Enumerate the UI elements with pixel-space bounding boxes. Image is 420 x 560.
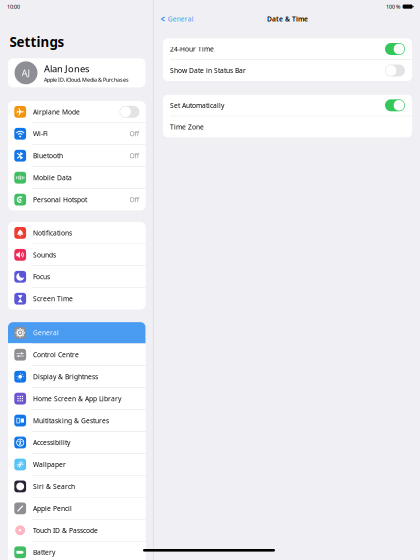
button[interactable]: Multitasking & Gestures [8, 410, 145, 431]
staticText: Settings [9, 33, 64, 51]
button[interactable]: Bluetooth [8, 145, 145, 166]
button[interactable]: Set Automatically [163, 95, 412, 116]
staticText: Airplane Mode [33, 107, 80, 116]
staticText: Time Zone [170, 122, 204, 131]
button[interactable]: General [8, 322, 145, 343]
button[interactable]: General [163, 12, 200, 26]
staticText: Alan Jones [44, 62, 89, 75]
button[interactable]: Focus [8, 266, 145, 287]
staticText: Apple Pencil [33, 504, 72, 513]
button[interactable]: Apple Pencil [8, 498, 145, 519]
staticText: 10:00 [7, 3, 20, 10]
staticText: Set Automatically [170, 101, 224, 110]
staticText: Off [129, 151, 139, 160]
staticText: Accessibility [33, 438, 70, 447]
staticText: Apple ID, iCloud, Media & Purchases [44, 76, 129, 83]
staticText: Wi-Fi [33, 129, 48, 138]
staticText: Screen Time [33, 294, 73, 303]
button[interactable]: Mobile Data [8, 167, 145, 188]
staticText: Battery [33, 548, 55, 557]
staticText: Home Screen & App Library [33, 394, 121, 403]
staticText: AJ [21, 67, 30, 79]
staticText: Bluetooth [33, 151, 63, 160]
button[interactable]: Time Zone [163, 116, 412, 137]
staticText: Show Date in Status Bar [170, 66, 246, 75]
staticText: Display & Brightness [33, 372, 98, 381]
staticText: General [33, 328, 59, 337]
staticText: General [168, 15, 194, 23]
button[interactable]: Airplane Mode [8, 101, 145, 122]
staticText: Off [129, 129, 139, 138]
button[interactable]: 24-Hour Time [163, 39, 412, 59]
button[interactable]: AJ [8, 58, 145, 87]
button[interactable]: Sounds [8, 244, 145, 265]
button[interactable]: Personal Hotspot [8, 189, 145, 210]
staticText: Personal Hotspot [33, 195, 87, 204]
staticText: Sounds [33, 250, 56, 259]
staticText: Touch ID & Passcode [33, 526, 98, 535]
staticText: Off [129, 195, 139, 204]
button[interactable]: Siri & Search [8, 476, 145, 497]
staticText: Mobile Data [33, 173, 72, 182]
button[interactable]: Show Date in Status Bar [163, 60, 412, 81]
staticText: Notifications [33, 228, 72, 237]
staticText: Multitasking & Gestures [33, 416, 109, 425]
staticText: Control Centre [33, 350, 79, 359]
button[interactable]: Control Centre [8, 344, 145, 365]
button[interactable]: Notifications [8, 222, 145, 243]
button[interactable]: Display & Brightness [8, 366, 145, 387]
staticText: Siri & Search [33, 482, 75, 491]
button[interactable]: Home Screen & App Library [8, 388, 145, 409]
staticText: 24-Hour Time [170, 45, 214, 53]
button[interactable]: Touch ID & Passcode [8, 520, 145, 541]
button[interactable]: Screen Time [8, 288, 145, 309]
staticText: Focus [33, 272, 50, 281]
button[interactable]: Wallpaper [8, 454, 145, 475]
staticText: Wallpaper [33, 460, 66, 469]
button[interactable]: Accessibility [8, 432, 145, 453]
button[interactable]: Wi-Fi [8, 123, 145, 144]
button[interactable]: Battery [8, 542, 145, 560]
staticText: 100 % [386, 3, 400, 10]
staticText: Date & Time [267, 15, 308, 23]
